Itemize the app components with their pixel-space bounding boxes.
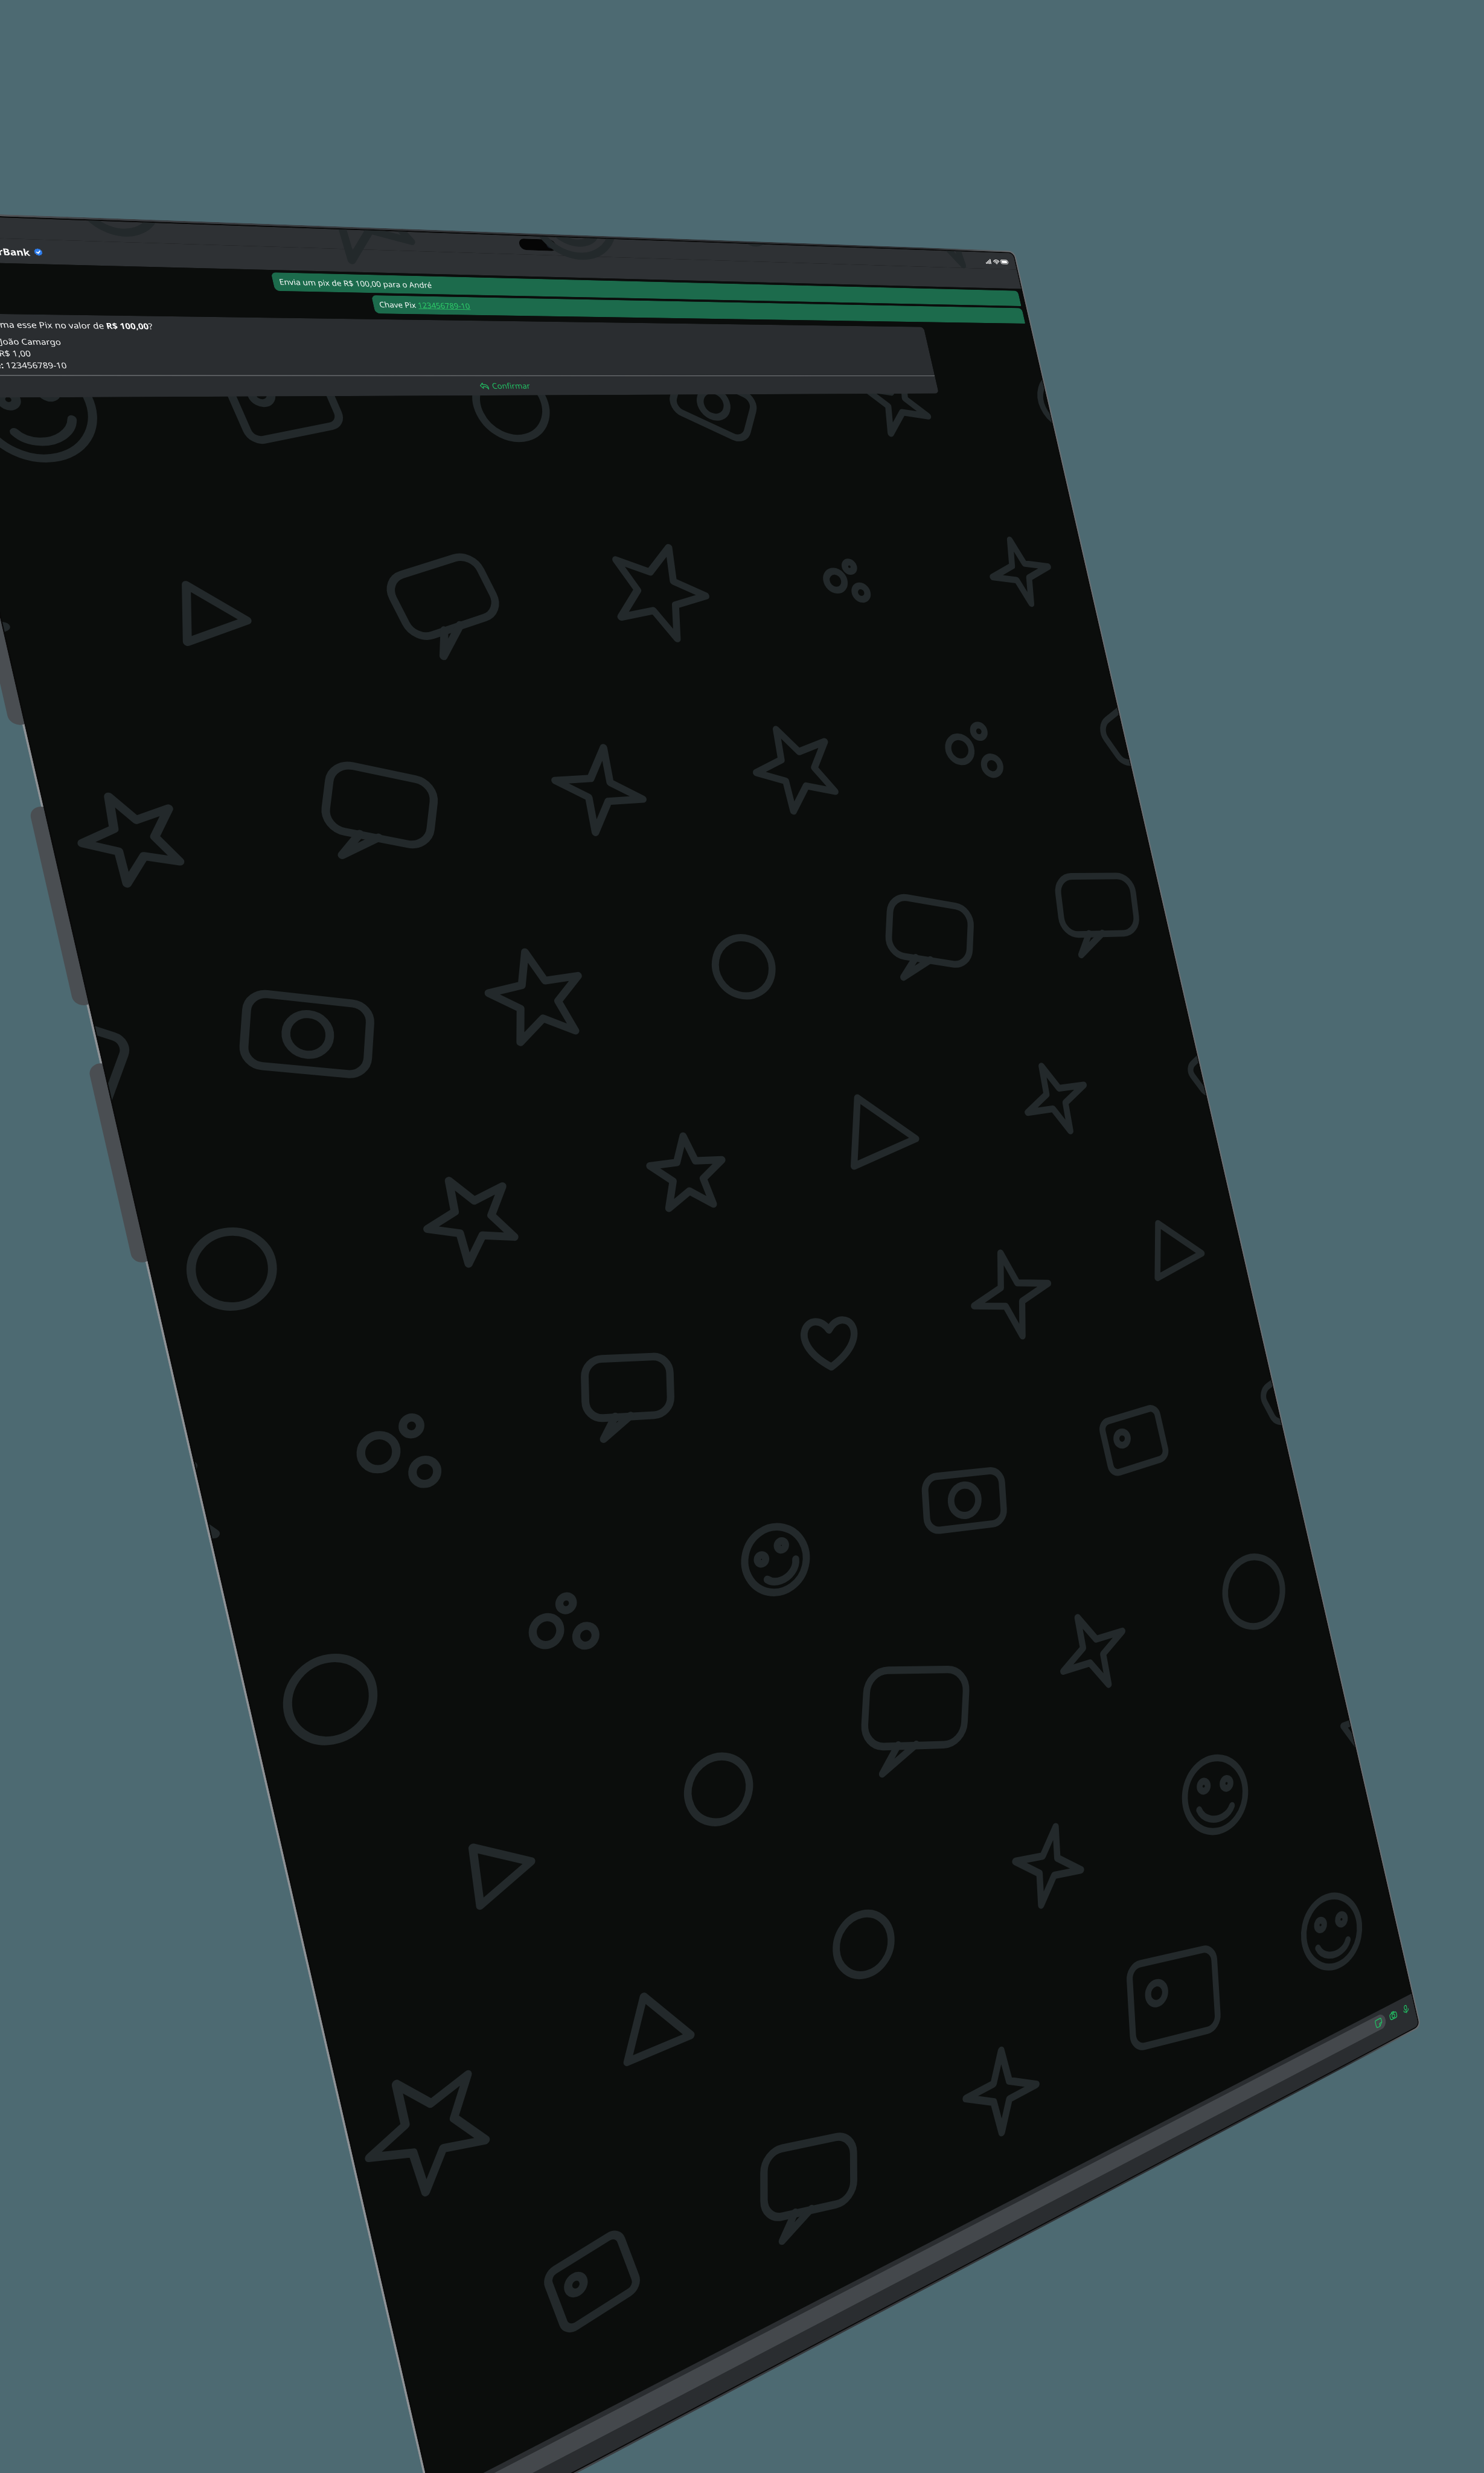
other: Sticker <box>1374 2017 1383 2029</box>
staticText: Valor: R$ 1,00 <box>0 347 32 359</box>
staticText: Envia um pix de R$ 100,00 para o André <box>278 277 433 290</box>
button[interactable]: Voice message <box>1400 2001 1411 2017</box>
staticText: Confirmar <box>491 380 531 391</box>
button[interactable]: Confirmar <box>0 376 939 398</box>
button[interactable]: S <box>0 240 45 261</box>
button[interactable]: Sticker <box>461 2012 1387 2473</box>
staticText: Chave: 123456789-10 <box>0 359 68 371</box>
staticText: Nome: João Camargo <box>0 335 63 347</box>
button[interactable]: Envia um pix de R$ 100,00 para o André <box>271 272 1021 306</box>
staticText: SuperBank <box>0 244 32 258</box>
staticText: Você confirma esse Pix no valor de R$ 10… <box>0 318 154 332</box>
button[interactable]: Chave Pix 123456789-10 <box>371 295 1025 324</box>
button[interactable]: Camera <box>1387 2007 1399 2024</box>
staticText: Chave Pix 123456789-10 <box>378 299 472 311</box>
